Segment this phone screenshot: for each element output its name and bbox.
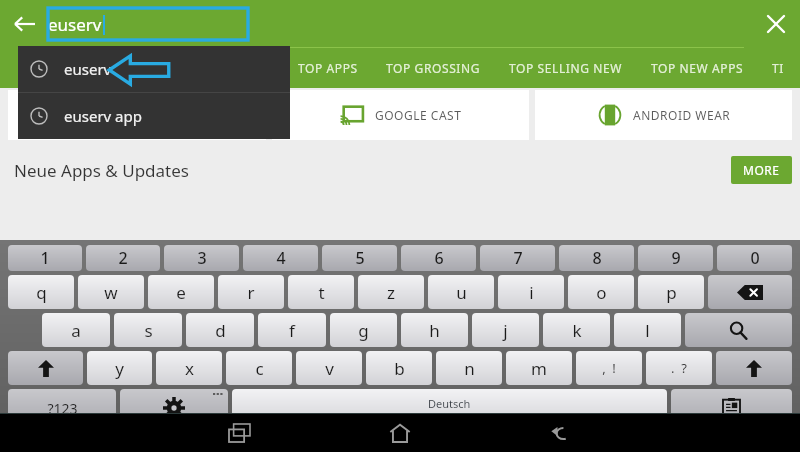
button[interactable]: 2: [86, 245, 160, 271]
button[interactable]: 9: [638, 245, 713, 271]
staticText: Neue Apps & Updates: [14, 159, 189, 182]
staticText: 6: [434, 247, 444, 269]
button[interactable]: , !: [576, 351, 642, 385]
button[interactable]: Deutsch: [232, 389, 667, 427]
button[interactable]: g: [330, 313, 397, 347]
button[interactable]: Recents: [211, 414, 267, 452]
staticText: euserv: [48, 13, 102, 36]
staticText: d: [215, 319, 226, 342]
staticText: n: [464, 357, 475, 380]
button[interactable]: 7: [480, 245, 555, 271]
button[interactable]: TOP SELLING NEW: [509, 60, 623, 76]
staticText: c: [255, 357, 264, 380]
button[interactable]: Shift: [716, 351, 792, 385]
button[interactable]: o: [568, 275, 634, 309]
button[interactable]: d: [186, 313, 254, 347]
button[interactable]: c: [226, 351, 292, 385]
staticText: 8: [592, 247, 602, 269]
staticText: euserv app: [64, 106, 142, 126]
button[interactable]: Back: [0, 0, 48, 48]
staticText: TOP GROSSING: [386, 60, 481, 76]
button[interactable]: GOOGLE CAST: [272, 90, 529, 140]
staticText: 2: [118, 247, 128, 269]
button[interactable]: l: [614, 313, 681, 347]
staticText: ANDROID WEAR: [633, 107, 731, 123]
button[interactable]: euserv app: [18, 93, 290, 139]
staticText: EDITORS' CHOICE: [102, 107, 209, 123]
button[interactable]: a: [42, 313, 110, 347]
button[interactable]: 4: [243, 245, 318, 271]
button[interactable]: MORE: [743, 162, 780, 178]
staticText: , !: [602, 359, 616, 377]
button[interactable]: u: [428, 275, 494, 309]
button[interactable]: m: [506, 351, 572, 385]
button[interactable]: euserv: [18, 46, 290, 92]
button[interactable]: Clear: [752, 0, 800, 48]
button[interactable]: i: [498, 275, 564, 309]
staticText: ?123: [47, 399, 78, 418]
staticText: w: [104, 281, 118, 304]
button[interactable]: euserv: [48, 0, 744, 48]
button[interactable]: t: [288, 275, 354, 309]
staticText: k: [572, 319, 582, 342]
staticText: x: [185, 357, 194, 380]
button[interactable]: h: [401, 313, 468, 347]
button[interactable]: q: [8, 275, 74, 309]
staticText: Deutsch: [428, 396, 471, 411]
button[interactable]: z: [358, 275, 424, 309]
button[interactable]: ANDROID WEAR: [535, 90, 792, 140]
button[interactable]: f: [258, 313, 326, 347]
staticText: 0: [750, 247, 760, 269]
staticText: z: [387, 281, 395, 304]
button[interactable]: b: [366, 351, 432, 385]
staticText: 5: [355, 247, 365, 269]
staticText: TOP APPS: [298, 60, 358, 76]
button[interactable]: j: [472, 313, 539, 347]
button[interactable]: w: [78, 275, 144, 309]
button[interactable]: p: [638, 275, 704, 309]
button[interactable]: TI: [772, 60, 784, 76]
button[interactable]: Backspace: [708, 275, 792, 309]
button[interactable]: y: [87, 351, 152, 385]
staticText: o: [596, 281, 607, 304]
staticText: j: [503, 319, 508, 342]
button[interactable]: TOP APPS: [298, 60, 358, 76]
button[interactable]: Clipboard: [671, 389, 792, 427]
staticText: b: [394, 357, 405, 380]
button[interactable]: x: [156, 351, 222, 385]
button[interactable]: e: [148, 275, 214, 309]
button[interactable]: EDITORS' CHOICE: [8, 90, 266, 140]
staticText: MORE: [743, 162, 780, 178]
staticText: euserv: [64, 59, 112, 79]
staticText: l: [645, 319, 650, 342]
button[interactable]: 1: [8, 245, 82, 271]
button[interactable]: TOP GROSSING: [386, 60, 481, 76]
button[interactable]: 5: [322, 245, 397, 271]
button[interactable]: 0: [717, 245, 792, 271]
button[interactable]: k: [543, 313, 610, 347]
staticText: i: [529, 281, 534, 304]
button[interactable]: 6: [401, 245, 476, 271]
button[interactable]: r: [218, 275, 284, 309]
button[interactable]: Back: [533, 414, 589, 452]
button[interactable]: Search: [685, 313, 792, 347]
button[interactable]: 8: [559, 245, 634, 271]
button[interactable]: v: [296, 351, 362, 385]
button[interactable]: Settings: [120, 389, 228, 427]
button[interactable]: ?123: [8, 389, 116, 427]
staticText: . ?: [671, 359, 687, 377]
staticText: y: [115, 357, 124, 380]
button[interactable]: 3: [164, 245, 239, 271]
staticText: e: [176, 281, 186, 304]
button[interactable]: . ?: [646, 351, 712, 385]
button[interactable]: Shift: [8, 351, 83, 385]
button[interactable]: n: [436, 351, 502, 385]
staticText: f: [289, 319, 295, 342]
button[interactable]: Home: [372, 414, 428, 452]
button[interactable]: TOP NEW APPS: [651, 60, 744, 76]
staticText: 1: [40, 247, 50, 269]
button[interactable]: s: [114, 313, 182, 347]
staticText: t: [318, 281, 325, 304]
